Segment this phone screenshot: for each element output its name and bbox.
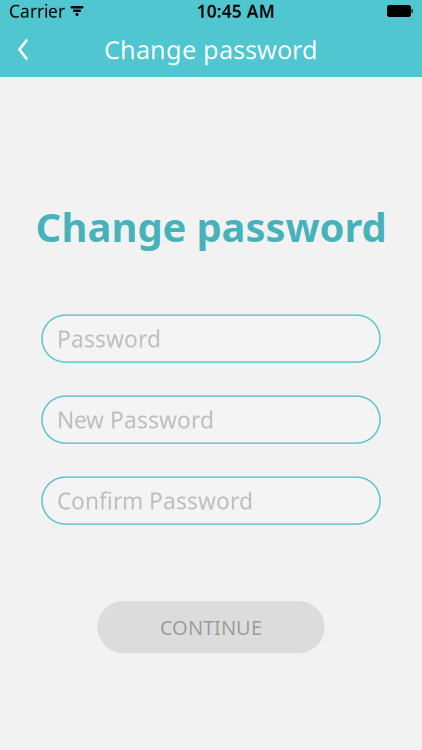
staticText: Carrier [9,0,65,22]
button[interactable]: CONTINUE [97,601,324,653]
staticText: Password [57,324,161,354]
staticText: Change password [104,33,318,66]
staticText: New Password [57,405,214,435]
staticText: CONTINUE [160,614,262,640]
staticText: Change password [35,200,386,253]
button[interactable]: Back [0,22,46,77]
staticText: Confirm Password [57,486,253,516]
staticText: 10:45 AM [197,0,275,22]
